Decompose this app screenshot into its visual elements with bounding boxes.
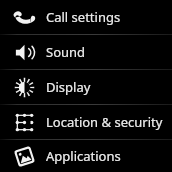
staticText: Call settings [46, 8, 121, 26]
staticText: Sound [46, 43, 86, 61]
button[interactable]: Applications [0, 140, 172, 172]
button[interactable]: Location & security [0, 105, 172, 139]
staticText: Applications [46, 147, 121, 165]
staticText: Location & security [46, 113, 163, 131]
staticText: Display [46, 78, 91, 96]
button[interactable]: Call settings [0, 0, 172, 34]
button[interactable]: Sound [0, 35, 172, 69]
button[interactable]: Display [0, 70, 172, 104]
